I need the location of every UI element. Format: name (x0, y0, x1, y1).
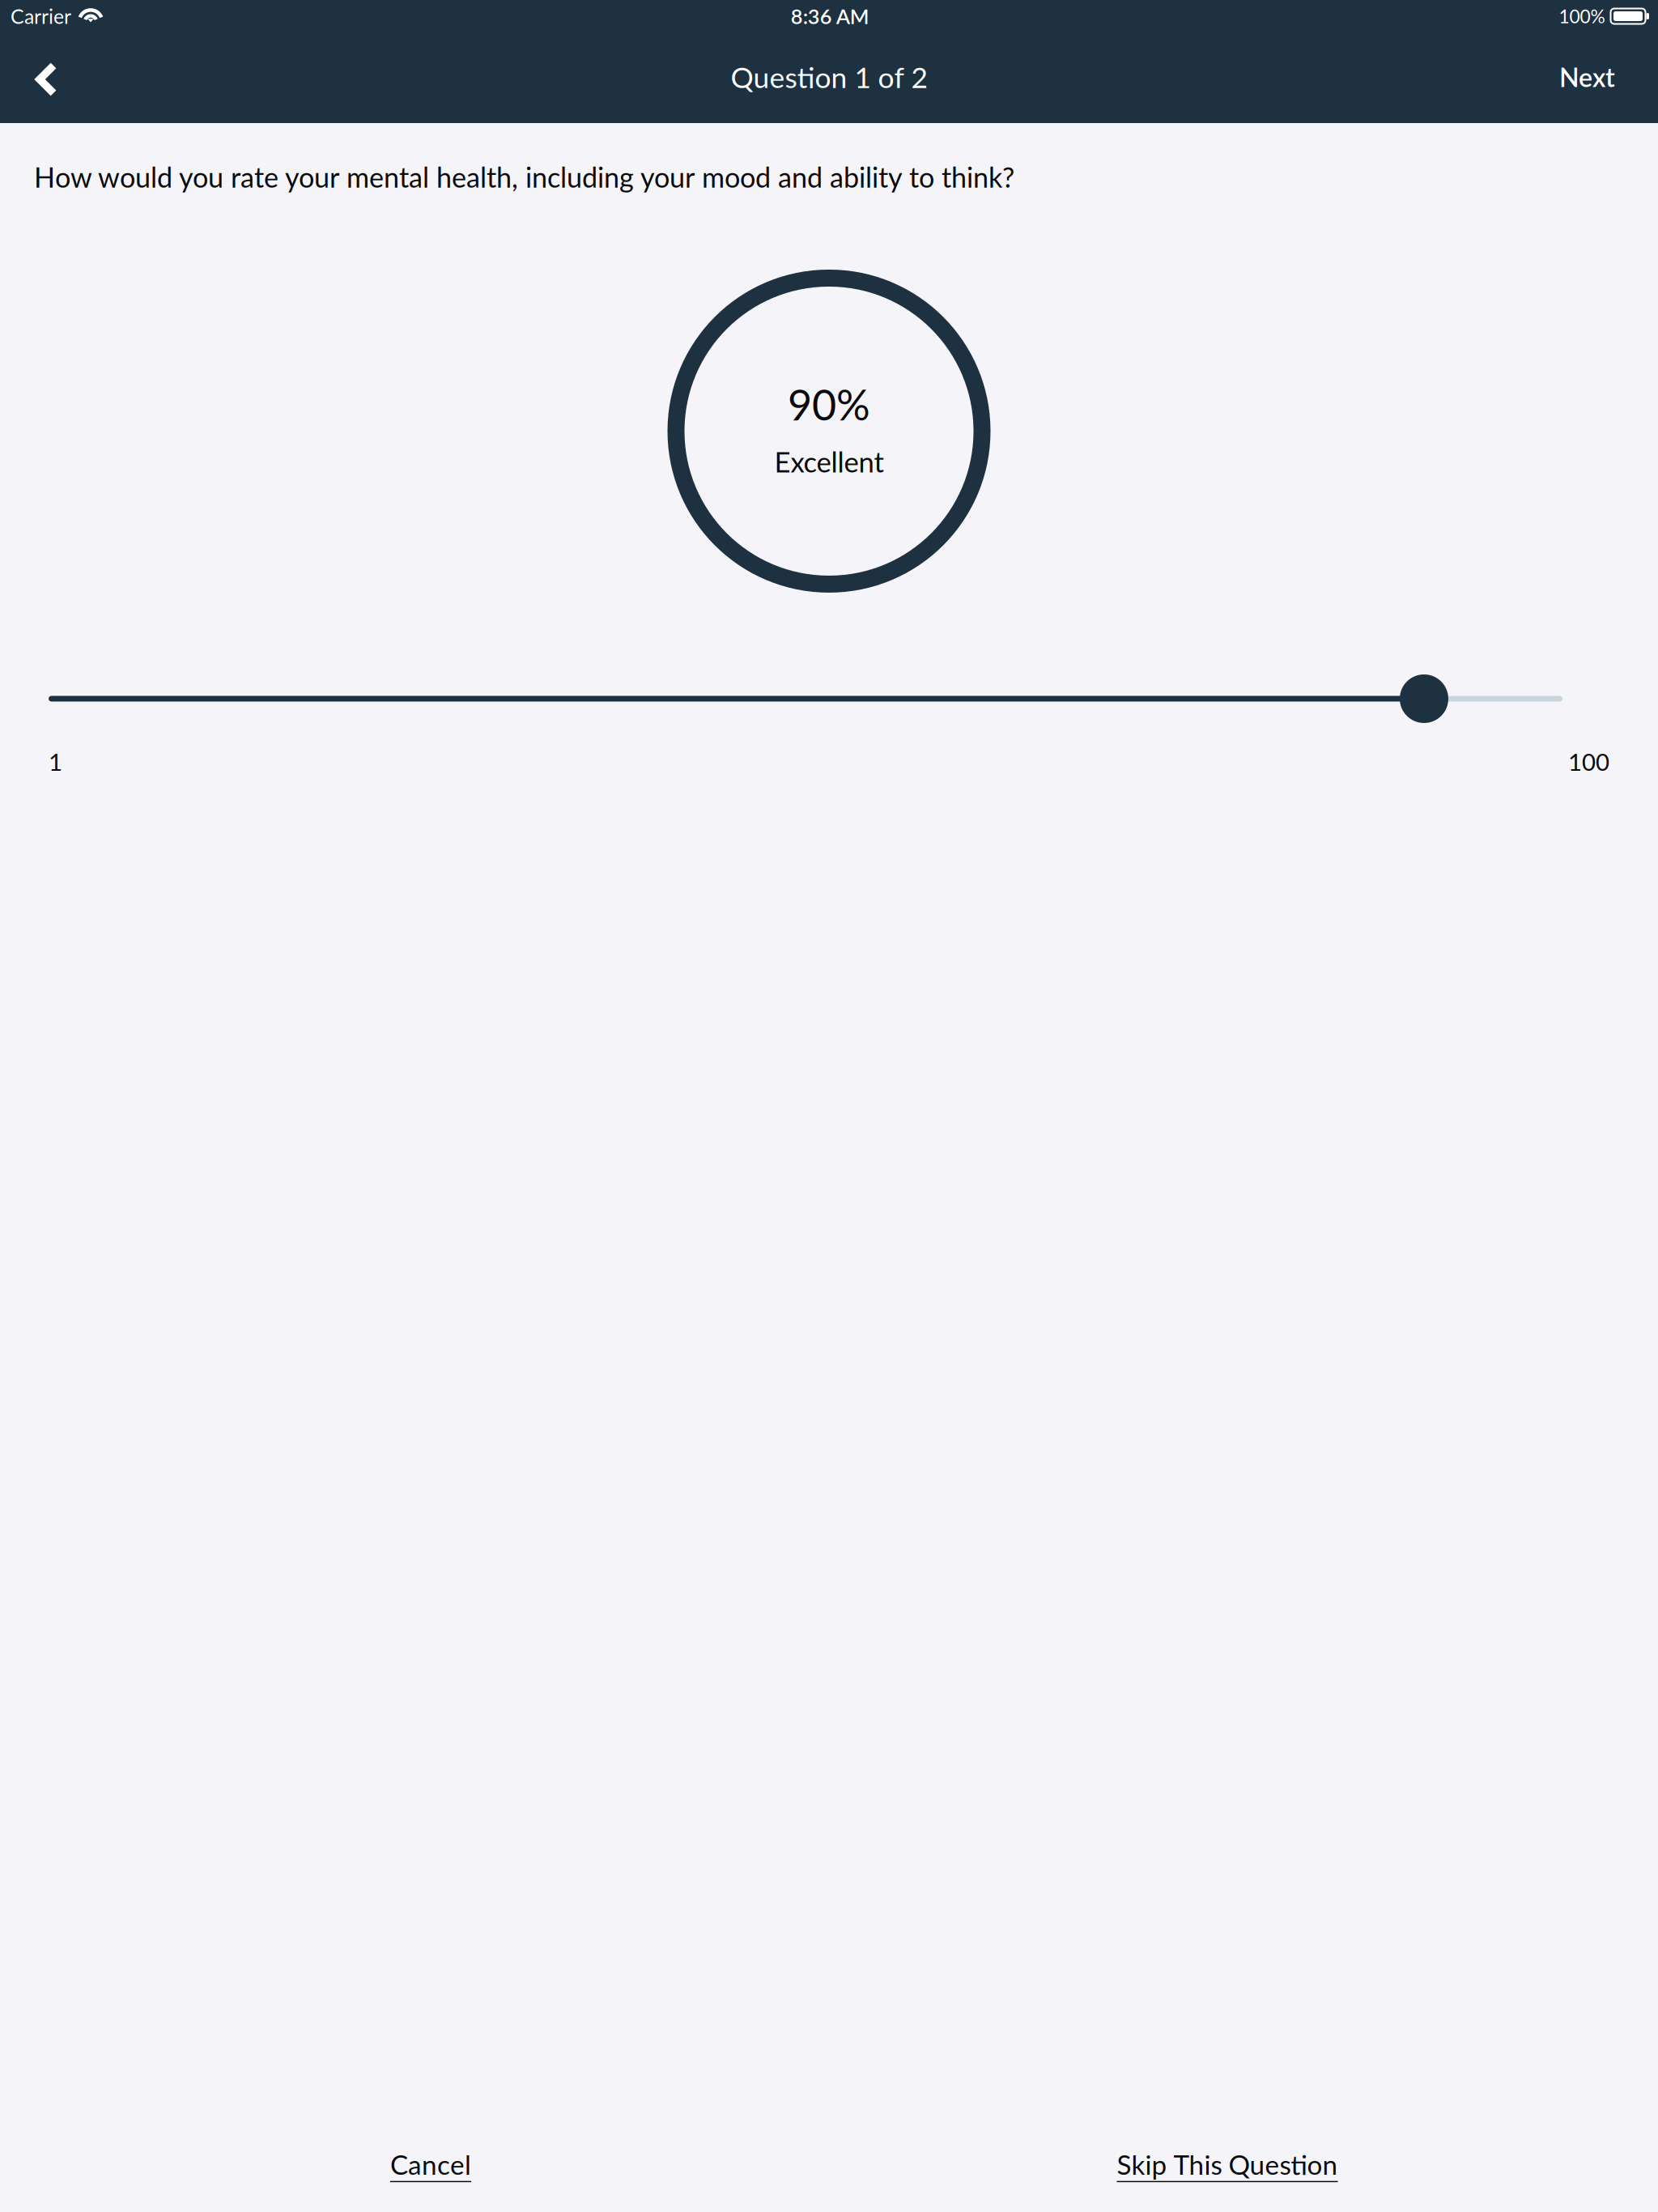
staticText: 8:36 AM (791, 4, 869, 29)
button[interactable]: Cancel (32, 2129, 829, 2200)
staticText: Next (1559, 61, 1615, 93)
staticText: Excellent (774, 445, 884, 479)
staticText: Cancel (390, 2148, 471, 2180)
staticText: How would you rate your mental health, i… (34, 160, 1014, 194)
staticText: 1 (49, 747, 62, 776)
staticText: Skip This Question (1117, 2148, 1338, 2180)
button[interactable]: Next (1532, 39, 1658, 123)
staticText: 100 (1568, 747, 1609, 776)
button[interactable]: Back (0, 39, 85, 123)
staticText: Question 1 of 2 (731, 60, 927, 94)
staticText: 100% (1559, 5, 1605, 27)
staticText: 90% (788, 379, 870, 429)
staticText: Carrier (11, 4, 71, 28)
button[interactable]: Skip This Question (829, 2129, 1626, 2200)
